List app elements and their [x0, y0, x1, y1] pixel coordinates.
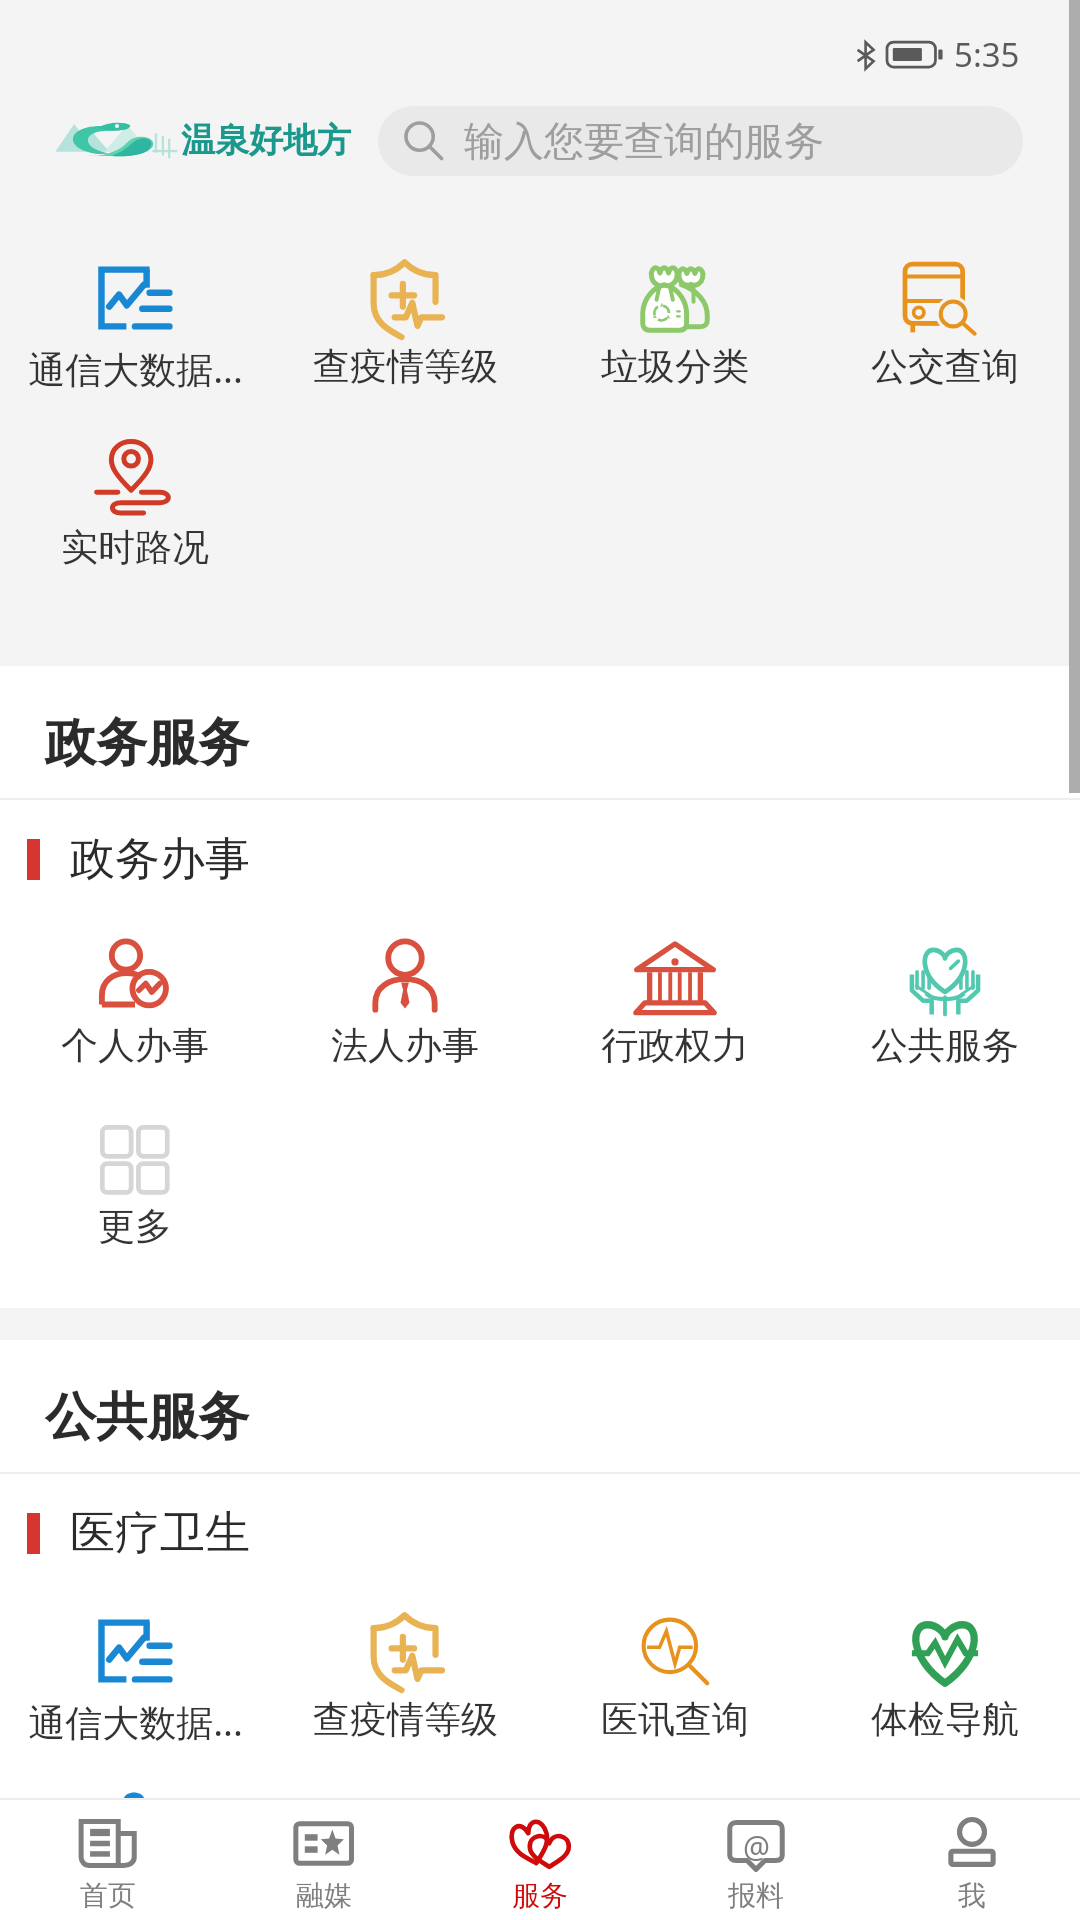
button[interactable]: 我 — [864, 1800, 1080, 1920]
button[interactable]: 通信大数据... — [0, 1593, 270, 1774]
button[interactable]: 查疫情等级 — [270, 1593, 540, 1774]
staticText: 法人办事 — [331, 1022, 479, 1069]
staticText: 个人办事 — [61, 1022, 209, 1069]
button[interactable]: 法人办事 — [270, 919, 540, 1100]
button[interactable]: 公共服务 — [810, 919, 1080, 1100]
button[interactable]: 体检导航 — [810, 1593, 1080, 1774]
staticText: 我 — [958, 1878, 986, 1913]
staticText: 首页 — [80, 1878, 136, 1913]
staticText: 公共服务 — [871, 1022, 1019, 1069]
button[interactable]: 公交查询 — [810, 240, 1080, 421]
staticText: 实时路况 — [61, 524, 209, 571]
staticText: 公交查询 — [871, 343, 1019, 390]
button[interactable]: 个人办事 — [0, 919, 270, 1100]
staticText: 政务服务 — [45, 711, 249, 775]
button[interactable]: 搜索服务 — [378, 106, 1023, 176]
staticText: 政务办事 — [70, 831, 250, 888]
staticText: 医疗卫生 — [70, 1505, 250, 1562]
staticText: 报料 — [728, 1878, 784, 1913]
staticText: 通信大数据... — [28, 1696, 243, 1747]
staticText: 融媒 — [296, 1878, 352, 1913]
button[interactable]: 通信大数据... — [0, 240, 270, 421]
staticText: 更多 — [98, 1203, 172, 1250]
button[interactable]: 实时路况 — [0, 421, 270, 602]
button[interactable]: 行政权力 — [540, 919, 810, 1100]
button[interactable]: @ — [648, 1800, 864, 1920]
staticText: 查疫情等级 — [313, 1696, 498, 1743]
staticText: 体检导航 — [871, 1696, 1019, 1743]
staticText: 输入您要查询的服务 — [464, 116, 824, 166]
staticText: 5:35 — [954, 32, 1020, 77]
button[interactable]: 查疫情等级 — [270, 240, 540, 421]
staticText: 医讯查询 — [601, 1696, 749, 1743]
staticText: 垃圾分类 — [601, 343, 749, 390]
button[interactable]: 更多 — [0, 1100, 270, 1281]
button[interactable]: 医讯查询 — [540, 1593, 810, 1774]
staticText: 查疫情等级 — [313, 343, 498, 390]
button[interactable]: 首页 — [0, 1800, 216, 1920]
button[interactable]: 服务 — [432, 1800, 648, 1920]
staticText: @ — [743, 1826, 770, 1867]
staticText: 服务 — [512, 1878, 568, 1913]
staticText: 温泉好地方 — [181, 119, 351, 162]
staticText: 通信大数据... — [28, 343, 243, 394]
staticText: 行政权力 — [601, 1022, 749, 1069]
button[interactable]: 垃圾分类 — [540, 240, 810, 421]
staticText: 公共服务 — [45, 1385, 249, 1449]
button[interactable]: 融媒 — [216, 1800, 432, 1920]
